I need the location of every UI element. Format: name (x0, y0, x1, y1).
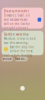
staticText: Snooze (2, 57, 12, 61)
staticText: Mark done (15, 57, 28, 61)
staticText: before the heat. (10, 49, 34, 53)
button[interactable]: Camera (20, 86, 25, 91)
staticText: tonight's dinner. (4, 26, 29, 30)
button[interactable]: Grocery reminder (2, 8, 43, 29)
staticText: still on the list for (4, 22, 30, 26)
button[interactable]: Snooze (2, 57, 13, 61)
button[interactable]: Mark done (15, 57, 28, 61)
staticText: Moisture is low in bed (4, 37, 36, 40)
staticText: Rain is due Thursday. (4, 54, 33, 57)
staticText: Grocery reminder (4, 9, 29, 13)
staticText: and mozzarella are (4, 18, 28, 21)
staticText: Garden watering (4, 33, 29, 36)
staticText: Start the drip line (10, 45, 35, 49)
staticText: Tomatoes, basil, oil (4, 14, 30, 17)
button[interactable]: Garden watering (2, 31, 43, 55)
staticText: two this morning. (4, 41, 29, 45)
